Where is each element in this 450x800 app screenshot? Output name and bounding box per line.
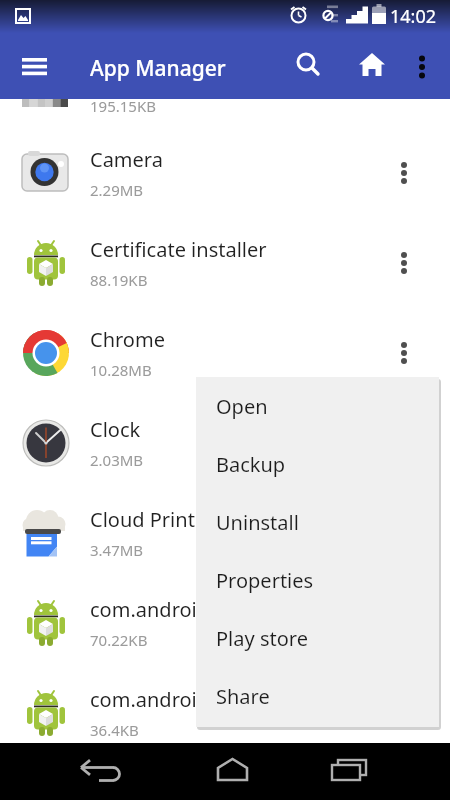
button[interactable]: Properties bbox=[196, 551, 439, 609]
staticText: com.android.browser.provider bbox=[90, 686, 373, 713]
button[interactable]: Certificate installer bbox=[0, 218, 450, 308]
staticText: Open bbox=[216, 393, 268, 420]
staticText: Cloud Print bbox=[90, 506, 195, 533]
button[interactable]: Play store bbox=[196, 609, 439, 667]
button[interactable] bbox=[390, 339, 418, 367]
staticText: 2.03MB bbox=[90, 450, 144, 470]
staticText: App Manager bbox=[90, 54, 226, 83]
staticText: 70.22KB bbox=[90, 630, 148, 650]
staticText: 2.29MB bbox=[90, 180, 144, 200]
staticText: 14:02 bbox=[390, 4, 437, 29]
staticText: Play store bbox=[216, 625, 308, 652]
button[interactable]: com.android.browser.provider bbox=[0, 668, 450, 743]
button[interactable] bbox=[326, 752, 372, 792]
button[interactable] bbox=[390, 249, 418, 277]
staticText: Camera bbox=[90, 146, 163, 173]
button[interactable] bbox=[12, 56, 56, 94]
button[interactable]: Chrome bbox=[0, 308, 450, 398]
button[interactable]: Open bbox=[196, 377, 439, 435]
staticText: Certificate installer bbox=[90, 236, 267, 263]
staticText: 10.28MB bbox=[90, 360, 152, 380]
button[interactable]: Cloud Print bbox=[0, 488, 450, 578]
button[interactable]: Clock bbox=[0, 398, 450, 488]
staticText: 195.15KB bbox=[90, 99, 156, 116]
staticText: 88.19KB bbox=[90, 270, 148, 290]
button[interactable]: Uninstall bbox=[196, 493, 439, 551]
button[interactable] bbox=[406, 46, 440, 80]
button[interactable] bbox=[290, 46, 326, 82]
button[interactable] bbox=[206, 752, 250, 792]
staticText: Clock bbox=[90, 416, 141, 443]
staticText: com.android.backupconfirm bbox=[90, 596, 356, 623]
button[interactable] bbox=[390, 159, 418, 187]
staticText: Chrome bbox=[90, 326, 165, 353]
button[interactable]: com.android.backupconfirm bbox=[0, 578, 450, 668]
staticText: Share bbox=[216, 683, 270, 710]
button[interactable]: Camera bbox=[0, 128, 450, 218]
staticText: Properties bbox=[216, 567, 314, 594]
button[interactable] bbox=[352, 46, 392, 86]
staticText: Uninstall bbox=[216, 509, 299, 536]
staticText: 36.4KB bbox=[90, 720, 139, 740]
button[interactable]: Share bbox=[196, 667, 439, 725]
staticText: Backup bbox=[216, 451, 286, 478]
button[interactable] bbox=[76, 752, 124, 792]
staticText: 3.47MB bbox=[90, 540, 144, 560]
button[interactable]: Backup bbox=[196, 435, 439, 493]
